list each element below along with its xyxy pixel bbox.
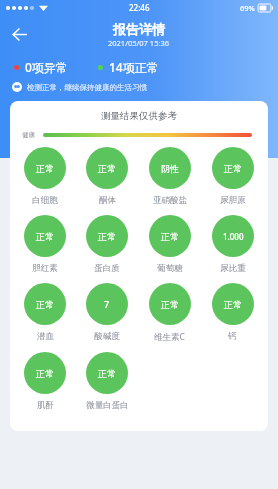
- staticText: 正常: [36, 368, 54, 379]
- staticText: 正常: [161, 231, 179, 242]
- staticText: 正常: [36, 163, 54, 174]
- button[interactable]: 1.000: [201, 215, 264, 283]
- staticText: 0项异常: [25, 59, 68, 75]
- staticText: 健康: [22, 131, 35, 139]
- staticText: 葡萄糖: [157, 263, 183, 274]
- staticText: 7: [104, 298, 110, 310]
- staticText: 钙: [228, 331, 237, 342]
- staticText: 亚硝酸盐: [153, 195, 187, 206]
- staticText: 微量白蛋白: [86, 400, 129, 411]
- button[interactable]: 正常: [76, 147, 138, 215]
- staticText: 报告详情: [113, 21, 165, 37]
- button[interactable]: 正常: [14, 215, 76, 283]
- staticText: 正常: [98, 231, 116, 242]
- button[interactable]: 正常: [14, 352, 76, 420]
- staticText: 正常: [224, 299, 242, 310]
- button[interactable]: 7: [76, 283, 138, 351]
- staticText: 尿比重: [220, 263, 246, 274]
- staticText: 正常: [161, 299, 179, 310]
- button[interactable]: 正常: [14, 147, 76, 215]
- button[interactable]: 正常: [138, 283, 201, 352]
- staticText: 正常: [224, 163, 242, 174]
- staticText: 维生素C: [154, 331, 185, 343]
- staticText: 测量结果仅供参考: [10, 110, 268, 122]
- staticText: 正常: [98, 368, 116, 379]
- staticText: 尿胆原: [220, 195, 246, 206]
- button[interactable]: 正常: [14, 283, 76, 351]
- staticText: 1.000: [223, 231, 244, 242]
- staticText: 69%: [240, 3, 255, 13]
- staticText: 酮体: [99, 195, 116, 206]
- staticText: 正常: [36, 231, 54, 242]
- button[interactable]: 正常: [138, 215, 201, 283]
- button[interactable]: 正常: [201, 283, 264, 351]
- staticText: 酸碱度: [94, 331, 120, 342]
- staticText: 潜血: [37, 331, 54, 342]
- staticText: 2021/05/07 15:36: [108, 38, 170, 48]
- staticText: 白细胞: [32, 195, 58, 206]
- button[interactable]: 正常: [76, 352, 138, 420]
- button[interactable]: 正常: [76, 215, 138, 283]
- staticText: 胆红素: [32, 263, 58, 274]
- staticText: 正常: [36, 299, 54, 310]
- staticText: 阴性: [161, 163, 179, 174]
- staticText: 检测正常，继续保持健康的生活习惯: [27, 83, 147, 92]
- staticText: 22:46: [129, 2, 150, 13]
- button[interactable]: Back: [4, 19, 34, 49]
- staticText: 肌酐: [37, 400, 54, 411]
- staticText: 蛋白质: [94, 263, 120, 274]
- staticText: 14项正常: [109, 59, 159, 75]
- staticText: 正常: [98, 163, 116, 174]
- button[interactable]: 正常: [201, 147, 264, 215]
- button[interactable]: 阴性: [138, 147, 201, 215]
